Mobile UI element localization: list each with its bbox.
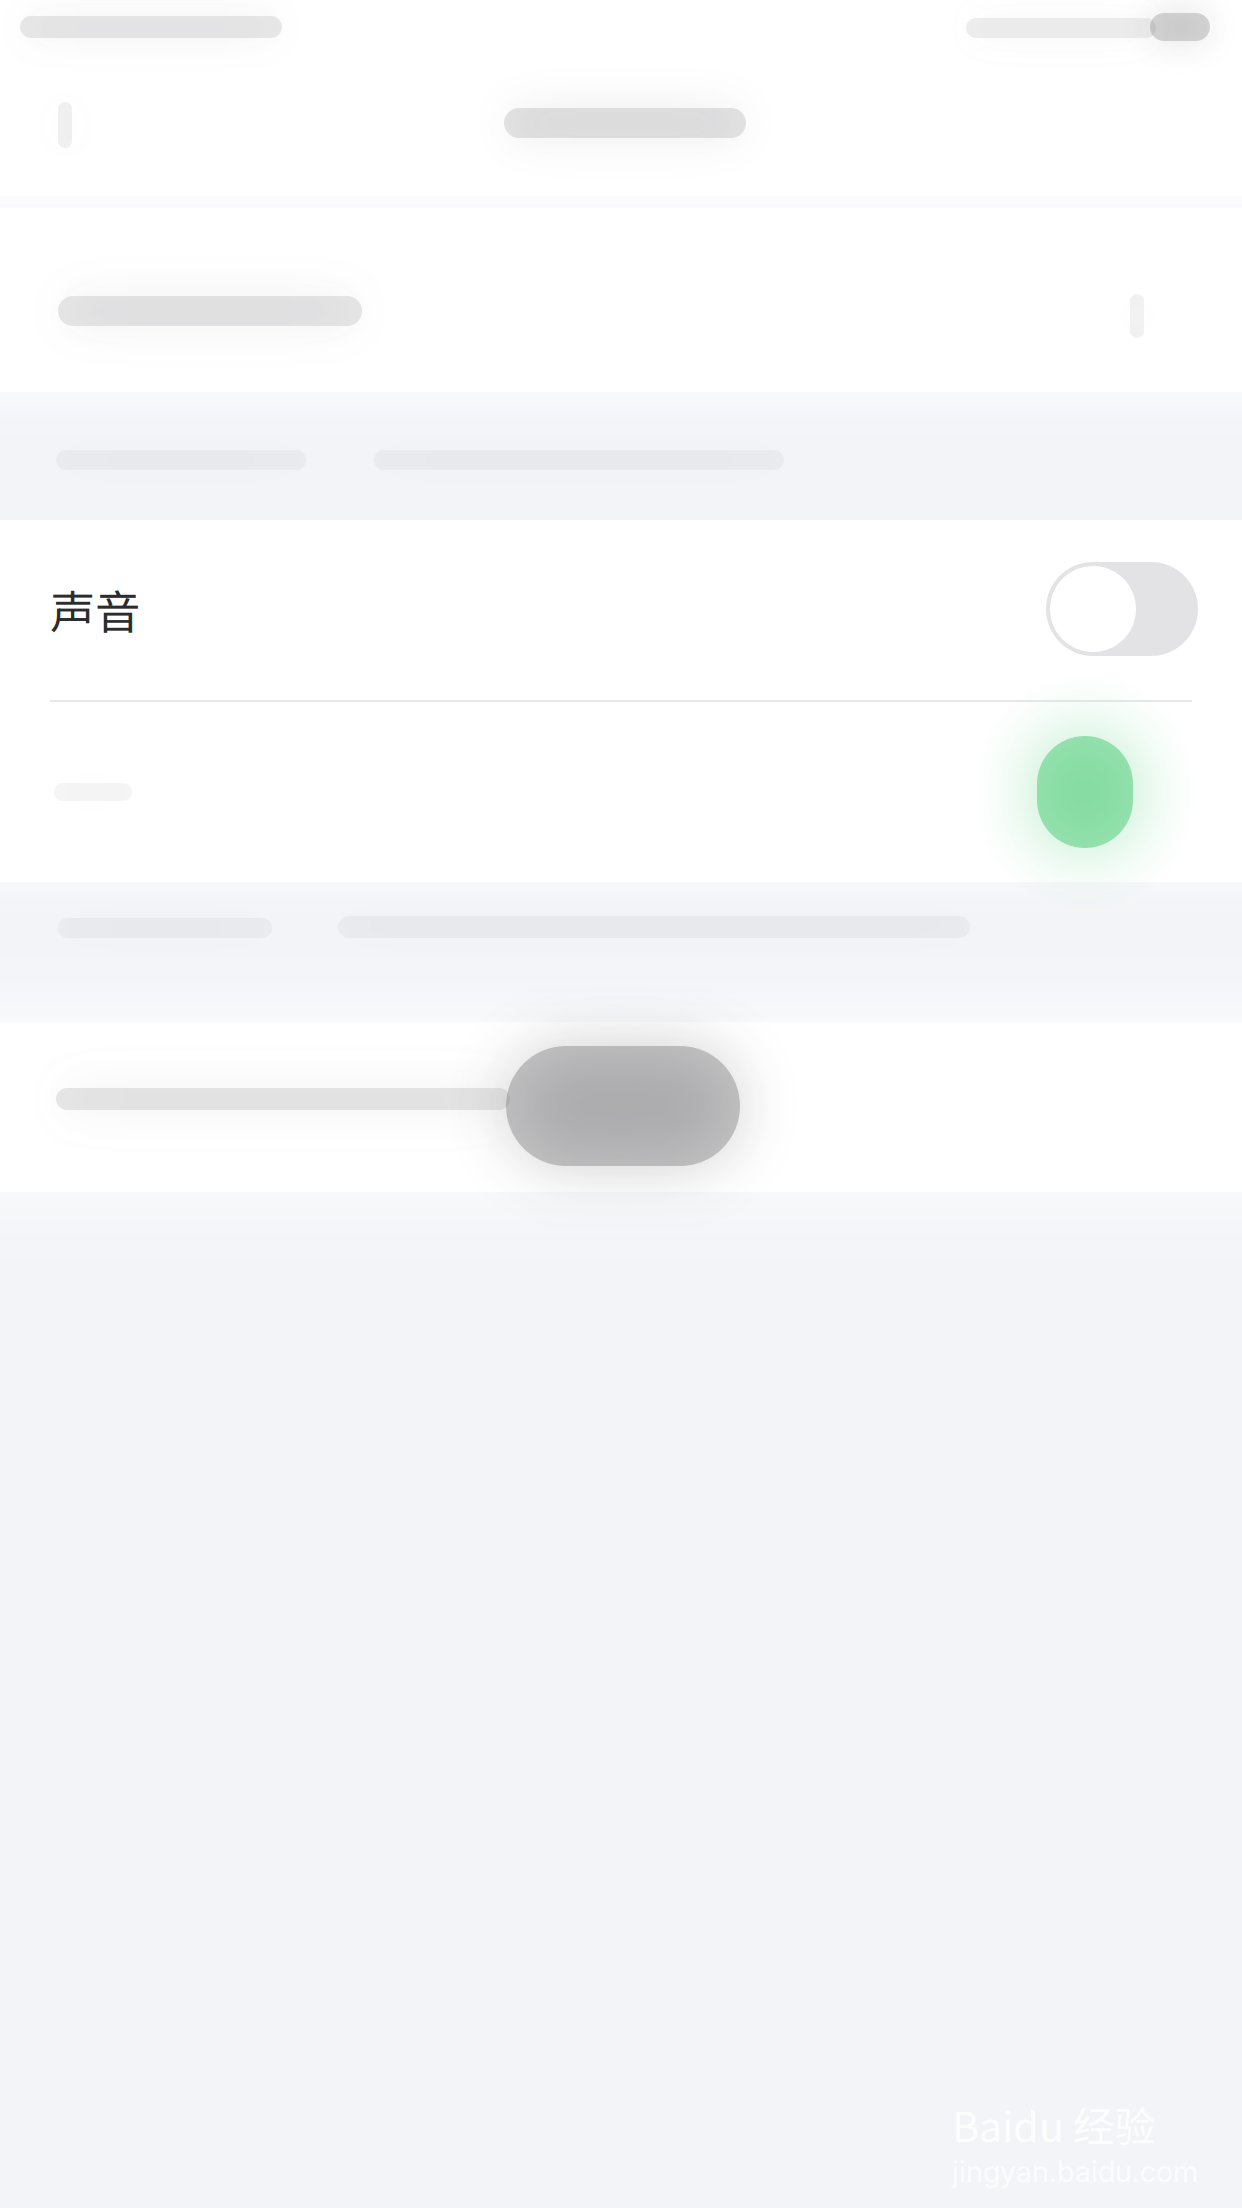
button[interactable]: 声音 bbox=[0, 518, 1242, 700]
staticText: jingyan.baidu.com bbox=[952, 2154, 1198, 2189]
staticText: Baidu 经验 bbox=[952, 2094, 1155, 2154]
button[interactable] bbox=[0, 702, 1242, 882]
staticText: 声音 bbox=[50, 576, 140, 642]
